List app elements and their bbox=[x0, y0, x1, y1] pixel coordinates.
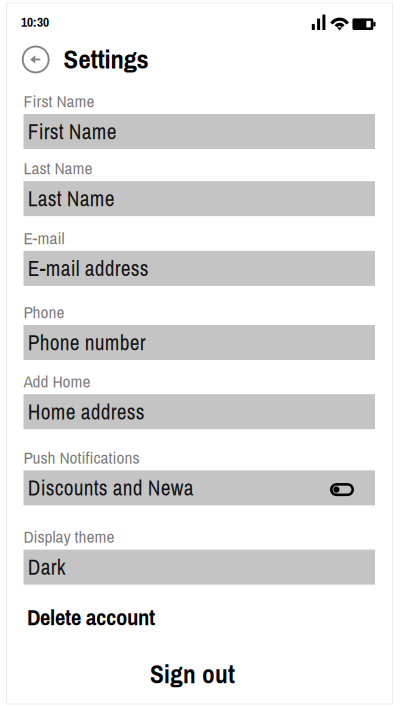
staticText: Sign out bbox=[150, 657, 235, 691]
button[interactable]: Sign out bbox=[0, 659, 385, 689]
staticText: 10:30 bbox=[21, 13, 49, 31]
button[interactable]: Last Name bbox=[23, 181, 375, 216]
button[interactable]: First Name bbox=[23, 114, 375, 149]
staticText: Delete account bbox=[27, 602, 155, 632]
staticText: Discounts and Newa bbox=[28, 473, 194, 502]
button[interactable]: E-mail address bbox=[23, 251, 375, 286]
button[interactable]: Dark bbox=[23, 550, 375, 585]
staticText: Last Name bbox=[23, 156, 92, 180]
staticText: Last Name bbox=[28, 184, 115, 213]
button[interactable]: Home address bbox=[23, 394, 375, 429]
staticText: E-mail bbox=[23, 226, 64, 249]
staticText: Add Home bbox=[23, 369, 90, 393]
staticText: Home address bbox=[28, 397, 145, 426]
staticText: Phone bbox=[23, 300, 64, 324]
staticText: Settings bbox=[63, 41, 148, 77]
staticText: First Name bbox=[28, 117, 117, 146]
staticText: E-mail address bbox=[28, 254, 149, 283]
staticText: Push Notifications bbox=[23, 446, 139, 469]
button[interactable]: Discounts and news notifications bbox=[330, 480, 354, 496]
button[interactable]: Phone number bbox=[23, 325, 375, 360]
staticText: First Name bbox=[23, 89, 94, 113]
button[interactable]: Discounts and Newa bbox=[23, 470, 375, 505]
staticText: Dark bbox=[28, 553, 66, 581]
staticText: Display theme bbox=[23, 525, 114, 548]
staticText: Phone number bbox=[28, 328, 146, 357]
button[interactable]: Back bbox=[20, 43, 52, 75]
button[interactable]: Delete account bbox=[0, 604, 400, 630]
